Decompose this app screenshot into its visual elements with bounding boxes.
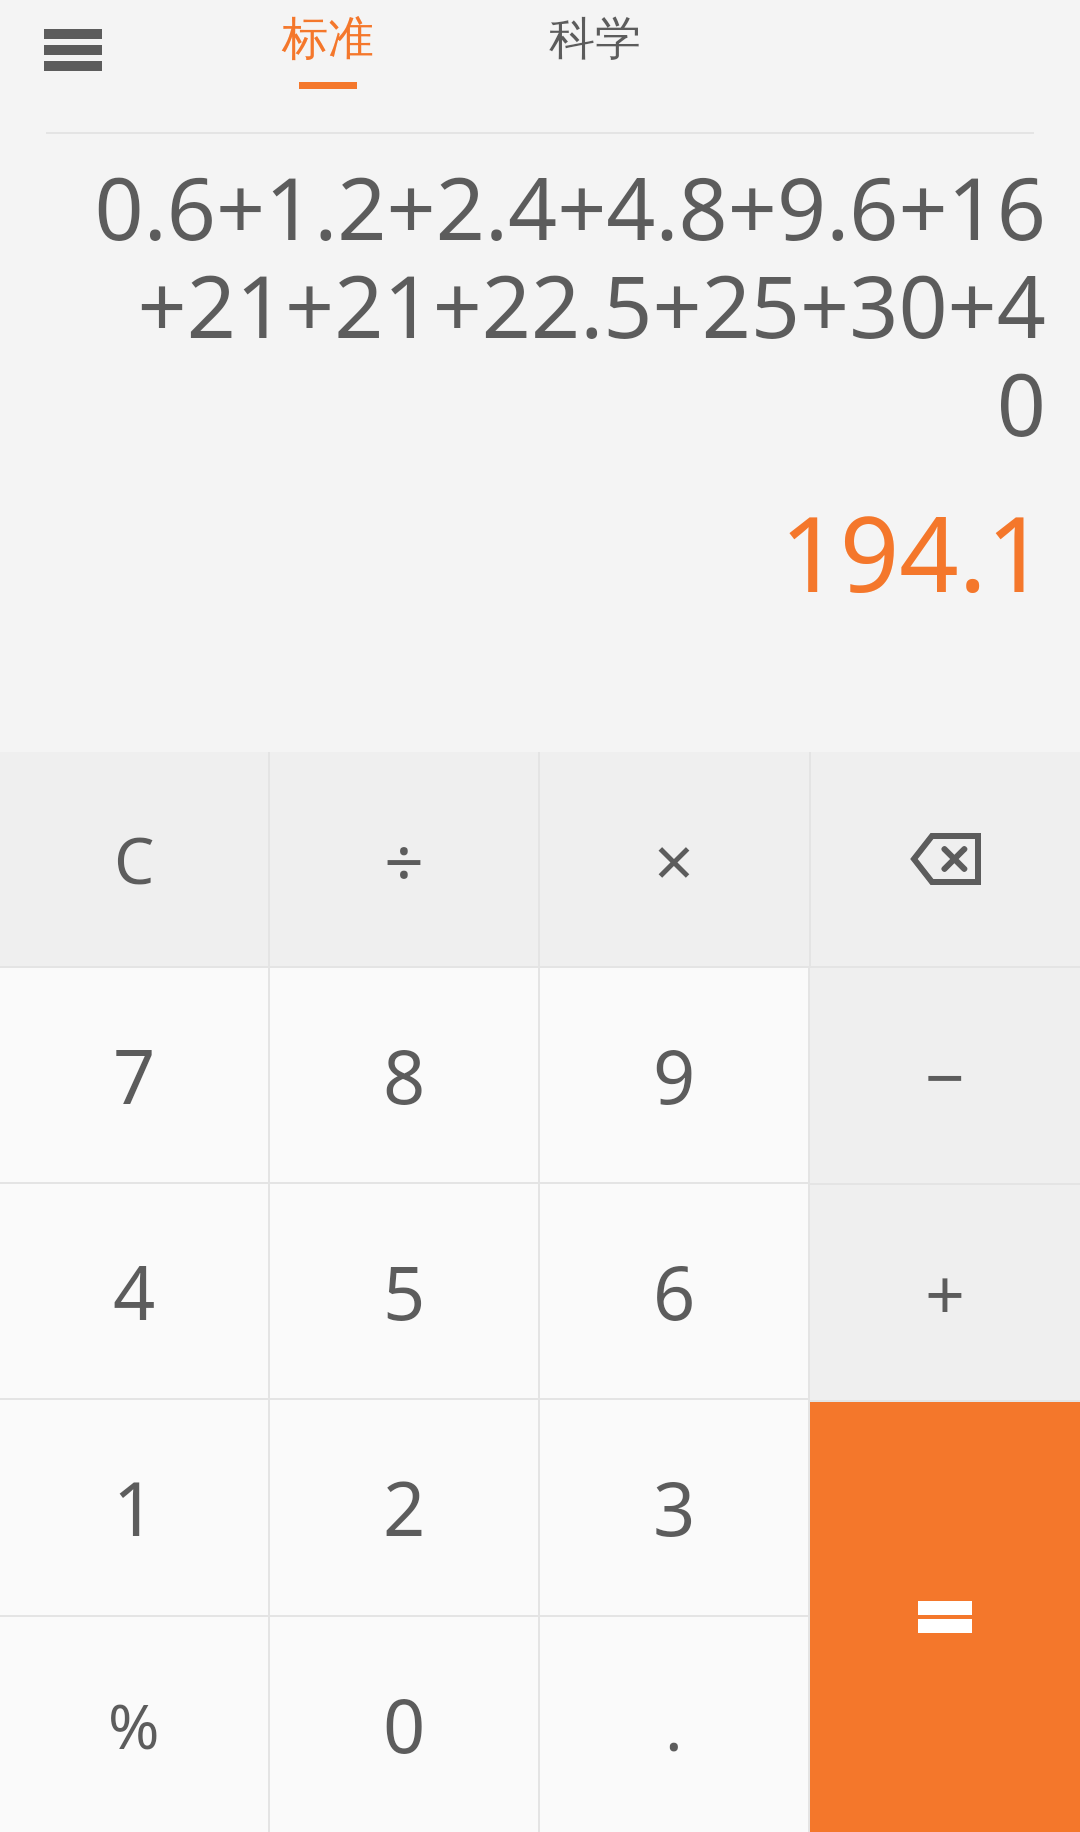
staticText: 2 bbox=[383, 1457, 426, 1558]
staticText: 3 bbox=[653, 1457, 696, 1558]
button[interactable]: 9 bbox=[540, 968, 808, 1182]
button[interactable]: 0 bbox=[270, 1617, 538, 1832]
staticText: 6 bbox=[653, 1241, 696, 1342]
button[interactable]: 6 bbox=[540, 1184, 808, 1398]
staticText: C bbox=[114, 816, 155, 903]
button[interactable]: . bbox=[540, 1617, 808, 1832]
button[interactable]: 3 bbox=[540, 1400, 808, 1615]
staticText: × bbox=[654, 812, 695, 907]
button[interactable]: + bbox=[810, 1185, 1080, 1400]
staticText: 科学 bbox=[549, 10, 641, 68]
button[interactable]: Menu bbox=[18, 0, 128, 100]
button[interactable]: 1 bbox=[0, 1400, 268, 1615]
staticText: 9 bbox=[653, 1025, 696, 1126]
staticText: ÷ bbox=[384, 812, 425, 907]
button[interactable]: C bbox=[0, 752, 268, 966]
button[interactable]: 7 bbox=[0, 968, 268, 1182]
staticText: 0.6+1.2+2.4+4.8+9.6+16+21+21+22.5+25+30+… bbox=[90, 148, 1046, 461]
button[interactable]: × bbox=[540, 752, 809, 966]
button[interactable]: 科学 bbox=[505, 0, 685, 124]
staticText: 标准 bbox=[282, 10, 374, 68]
staticText: % bbox=[108, 1683, 160, 1767]
button[interactable]: 4 bbox=[0, 1184, 268, 1398]
staticText: 5 bbox=[383, 1241, 426, 1342]
button[interactable]: − bbox=[810, 968, 1080, 1183]
button[interactable]: Backspace bbox=[811, 752, 1080, 966]
button[interactable]: 标准 bbox=[238, 0, 418, 124]
staticText: 194.1 bbox=[90, 481, 1046, 623]
staticText: 1 bbox=[113, 1457, 156, 1558]
staticText: 8 bbox=[383, 1025, 426, 1126]
staticText: + bbox=[925, 1245, 966, 1340]
staticText: − bbox=[925, 1028, 966, 1123]
button[interactable]: 8 bbox=[270, 968, 538, 1182]
button[interactable]: 2 bbox=[270, 1400, 538, 1615]
staticText: 0 bbox=[383, 1674, 426, 1775]
staticText: . bbox=[665, 1680, 683, 1770]
button[interactable]: Equals bbox=[810, 1402, 1080, 1832]
button[interactable]: ÷ bbox=[270, 752, 538, 966]
button[interactable]: 5 bbox=[270, 1184, 538, 1398]
staticText: 7 bbox=[113, 1025, 156, 1126]
staticText: 4 bbox=[113, 1241, 156, 1342]
button[interactable]: % bbox=[0, 1617, 268, 1832]
